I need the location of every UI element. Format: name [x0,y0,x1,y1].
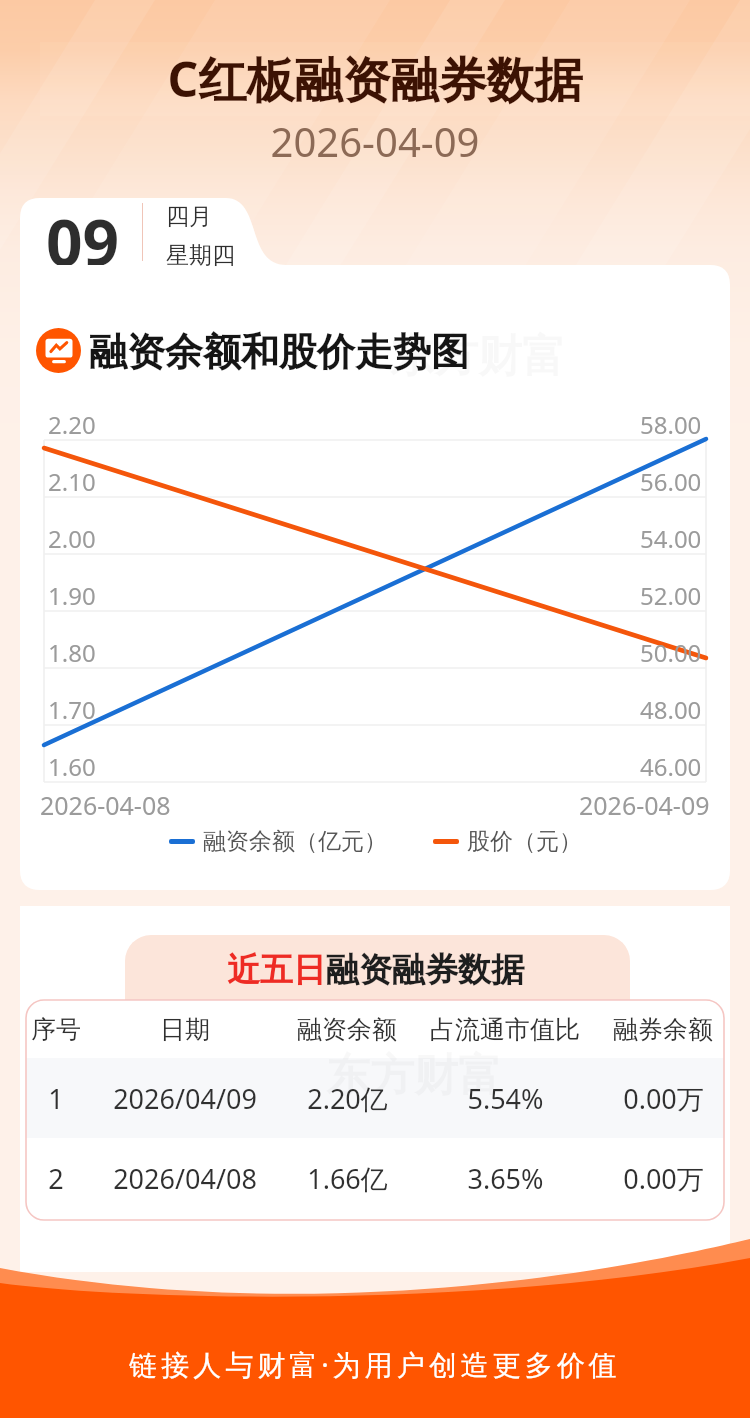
staticText: 占流通市值比 [430,1014,580,1045]
staticText: 2026-04-09 [579,788,710,822]
staticText: 48.00 [640,693,702,726]
button[interactable]: 09 [20,198,730,890]
staticText: 09 [46,198,120,265]
staticText: 2026-04-09 [0,114,750,168]
staticText: C红板融资融券数据 [0,46,750,112]
staticText: 58.00 [640,408,702,441]
staticText: 2.20亿 [307,1080,388,1117]
staticText: 1.66亿 [307,1160,388,1197]
staticText: 1.90 [48,579,96,612]
staticText: 2.20 [48,408,96,441]
staticText: 融资余额和股价走势图 [89,328,469,376]
staticText: 5.54% [467,1080,544,1117]
button[interactable] [26,1058,724,1138]
button[interactable]: 融资余额（亿元） [169,827,387,856]
staticText: 近五日 [227,949,326,991]
staticText: 日期 [160,1014,210,1045]
staticText: 3.65% [467,1160,544,1197]
staticText: 1.70 [48,693,96,726]
staticText: 四月 [166,202,212,231]
staticText: 融券余额 [613,1014,713,1045]
staticText: 股价（元） [467,827,582,856]
staticText: 56.00 [640,465,702,498]
staticText: 融资融券数据 [326,949,524,991]
staticText: 链接人与财富·为用户创造更多价值 [0,1345,750,1383]
staticText: 序号 [31,1014,81,1045]
staticText: 52.00 [640,579,702,612]
staticText: 0.00万 [623,1160,704,1197]
staticText: 2.00 [48,522,96,555]
staticText: 2026/04/08 [113,1160,257,1197]
staticText: 融资余额（亿元） [203,827,387,856]
button[interactable] [26,1138,724,1218]
staticText: 2026/04/09 [113,1080,257,1117]
button[interactable]: 股价（元） [433,827,582,856]
staticText: 1.60 [48,750,96,783]
staticText: 1 [48,1080,64,1117]
staticText: 2.10 [48,465,96,498]
staticText: 融资余额 [297,1014,397,1045]
button[interactable] [26,1000,724,1058]
staticText: 0.00万 [623,1080,704,1117]
button[interactable]: 近五日 [20,906,730,1272]
staticText: 东方财富 [390,329,566,384]
staticText: 54.00 [640,522,702,555]
staticText: 星期四 [166,241,235,269]
staticText: 1.80 [48,636,96,669]
other: 走势图 [36,328,81,373]
staticText: 2 [48,1160,64,1197]
staticText: 东方财富 [326,1048,502,1103]
staticText: 2026-04-08 [40,788,171,822]
staticText: 46.00 [640,750,702,783]
staticText: 50.00 [640,636,702,669]
